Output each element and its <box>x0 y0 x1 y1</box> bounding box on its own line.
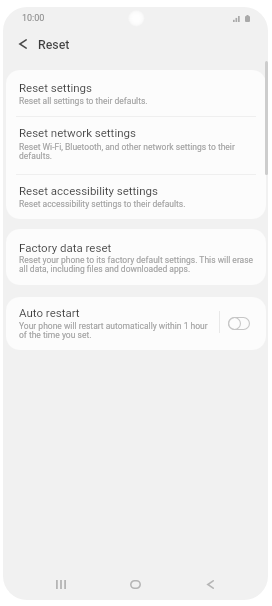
button[interactable]: Reset settings <box>6 70 266 116</box>
staticText: 10:00 <box>22 13 45 24</box>
button[interactable]: Back <box>173 566 248 602</box>
staticText: Reset Wi-Fi, Bluetooth, and other networ… <box>19 142 260 161</box>
staticText: Reset network settings <box>19 126 136 139</box>
button[interactable]: Reset accessibility settings <box>6 174 266 219</box>
staticText: Reset accessibility settings to their de… <box>19 199 260 209</box>
button[interactable]: Recent apps <box>24 566 98 602</box>
staticText: Reset settings <box>19 81 92 94</box>
staticText: Reset all settings to their defaults. <box>19 96 260 106</box>
staticText: Factory data reset <box>19 241 112 254</box>
staticText: Reset your phone to its factory default … <box>19 255 260 274</box>
button[interactable]: Navigate up <box>10 31 36 57</box>
staticText: Reset accessibility settings <box>19 184 158 197</box>
button[interactable]: Auto restart <box>228 317 250 330</box>
button[interactable]: Home <box>98 566 173 602</box>
staticText: Reset <box>38 38 70 52</box>
staticText: Auto restart <box>19 306 80 319</box>
staticText: Your phone will restart automatically wi… <box>19 321 215 340</box>
button[interactable]: Auto restart <box>6 297 219 350</box>
button[interactable]: Reset network settings <box>6 116 266 174</box>
button[interactable]: Factory data reset <box>6 229 266 285</box>
